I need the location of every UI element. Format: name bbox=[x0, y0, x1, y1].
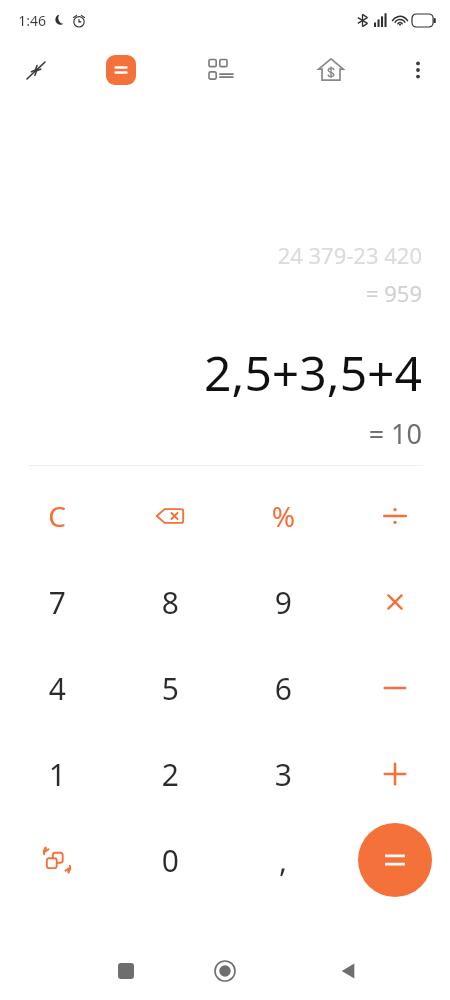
button[interactable]: 4 bbox=[0, 645, 113, 731]
staticText: C bbox=[48, 497, 66, 535]
staticText: 0 bbox=[161, 840, 179, 881]
staticText: 1:46 bbox=[18, 11, 46, 30]
button[interactable]: Minus bbox=[339, 645, 450, 731]
button[interactable]: 5 bbox=[113, 645, 226, 731]
staticText: 1 bbox=[48, 754, 66, 795]
button[interactable]: 1 bbox=[0, 731, 113, 817]
button[interactable]: Tools bbox=[198, 47, 244, 93]
button[interactable]: 7 bbox=[0, 559, 113, 645]
staticText: 4 bbox=[48, 668, 66, 709]
button[interactable]: 8 bbox=[113, 559, 226, 645]
button[interactable]: Convert units bbox=[0, 817, 113, 903]
staticText: 8 bbox=[161, 582, 179, 623]
staticText: = 10 bbox=[368, 415, 422, 452]
staticText: 9 bbox=[274, 582, 292, 623]
button[interactable]: 9 bbox=[226, 559, 339, 645]
button[interactable]: 2 bbox=[113, 731, 226, 817]
button[interactable]: Recents bbox=[102, 947, 150, 995]
button[interactable]: Plus bbox=[339, 731, 450, 817]
button[interactable]: Collapse bbox=[14, 48, 58, 92]
staticText: 2 bbox=[161, 754, 179, 795]
button[interactable]: 0 bbox=[113, 817, 226, 903]
staticText: 24 379-23 420 bbox=[277, 240, 422, 270]
button[interactable]: Backspace bbox=[113, 473, 226, 559]
button[interactable]: Calculator bbox=[98, 47, 144, 93]
button[interactable]: Multiply bbox=[339, 559, 450, 645]
button[interactable]: C bbox=[0, 473, 113, 559]
button[interactable]: Back bbox=[324, 947, 372, 995]
staticText: 5 bbox=[161, 668, 179, 709]
staticText: , bbox=[278, 840, 287, 881]
staticText: 6 bbox=[274, 668, 292, 709]
button[interactable]: Home bbox=[201, 947, 249, 995]
staticText: = 959 bbox=[365, 278, 422, 308]
button[interactable]: More options bbox=[396, 48, 440, 92]
button[interactable]: Mortgage bbox=[308, 47, 354, 93]
staticText: % bbox=[271, 497, 295, 535]
button[interactable]: Divide bbox=[339, 473, 450, 559]
staticText: 3 bbox=[274, 754, 292, 795]
button[interactable]: , bbox=[226, 817, 339, 903]
staticText: 2,5+3,5+4 bbox=[204, 340, 422, 405]
button[interactable]: Equals bbox=[358, 823, 432, 897]
button[interactable]: 3 bbox=[226, 731, 339, 817]
staticText: 7 bbox=[48, 582, 66, 623]
button[interactable]: 6 bbox=[226, 645, 339, 731]
button[interactable]: % bbox=[226, 473, 339, 559]
